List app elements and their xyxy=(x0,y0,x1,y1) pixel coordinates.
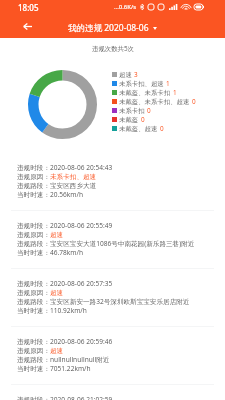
staticText: 1 xyxy=(166,79,170,88)
staticText: 超速 xyxy=(119,71,132,79)
staticText: ...0.6K/s xyxy=(114,3,137,11)
staticText: 2020-08-06 20:55:49 xyxy=(50,221,113,230)
staticText: 我的违规 2020-08-06 xyxy=(68,22,149,34)
staticText: 违规时段： xyxy=(17,280,50,288)
staticText: 未戴盔、未系卡扣、超速 xyxy=(119,98,190,106)
staticText: 违规路段： xyxy=(17,240,50,248)
staticText: 违规时段： xyxy=(17,164,50,172)
staticText: 违规次数共5次 xyxy=(92,44,134,53)
staticText: 110.92km/h xyxy=(50,306,87,315)
staticText: 违规时段： xyxy=(17,396,50,400)
button[interactable]: 违规时段： xyxy=(0,385,225,400)
staticText: 0 xyxy=(160,124,164,133)
staticText: 未戴盔、未系卡扣 xyxy=(119,89,171,97)
staticText: 20.56km/h xyxy=(50,190,84,199)
staticText: 违规路段： xyxy=(17,298,50,306)
staticText: 46.78km/h xyxy=(50,248,84,257)
staticText: 0 xyxy=(141,115,145,124)
staticText: 2020-08-06 20:57:35 xyxy=(50,279,113,288)
staticText: 1 xyxy=(173,88,177,97)
button[interactable]: 违规时段： xyxy=(0,153,225,211)
staticText: 3 xyxy=(134,70,138,79)
staticText: 超速 xyxy=(50,289,64,297)
staticText: 0 xyxy=(147,106,151,115)
staticText: 超速 xyxy=(50,231,64,239)
staticText: 宝安区宝安大道1086号中南花园(新乐路三巷)附近 xyxy=(50,239,195,248)
staticText: 当时时速： xyxy=(17,307,50,315)
staticText: 违规路段： xyxy=(17,356,50,364)
staticText: 未系卡扣、超速 xyxy=(119,80,164,88)
staticText: 未系卡扣 xyxy=(119,107,145,115)
staticText: 未系卡扣、超速 xyxy=(50,173,97,181)
staticText: 未戴盔、超速 xyxy=(119,125,158,133)
staticText: 违规原因： xyxy=(17,173,50,181)
staticText: 未戴盔 xyxy=(119,116,139,124)
button[interactable]: 违规时段： xyxy=(0,211,225,269)
staticText: 当时时速： xyxy=(17,191,50,199)
staticText: 宝安区新安一路32号深圳欧斯宝宝安乐居店附近 xyxy=(50,297,190,306)
staticText: 违规路段： xyxy=(17,182,50,190)
staticText: 超速 xyxy=(50,347,64,355)
staticText: 违规时段： xyxy=(17,338,50,346)
button[interactable]: 违规时段： xyxy=(0,269,225,327)
staticText: 当时时速： xyxy=(17,249,50,257)
button[interactable]: 我的违规 2020-08-06 xyxy=(68,16,157,40)
button[interactable]: 违规时段： xyxy=(0,327,225,385)
staticText: 违规原因： xyxy=(17,231,50,239)
staticText: 违规原因： xyxy=(17,347,50,355)
staticText: 违规时段： xyxy=(17,222,50,230)
staticText: 宝安区西乡大道 xyxy=(50,182,97,190)
staticText: 2020-08-06 21:02:59 xyxy=(50,395,113,400)
staticText: 违规原因： xyxy=(17,289,50,297)
staticText: 2020-08-06 20:54:43 xyxy=(50,163,113,172)
staticText: nullnullnullnull附近 xyxy=(50,355,110,364)
staticText: 0 xyxy=(192,97,196,106)
staticText: 7051.22km/h xyxy=(50,364,91,373)
staticText: 2020-08-06 20:59:46 xyxy=(50,337,113,346)
staticText: 18:05 xyxy=(18,2,39,13)
staticText: 当时时速： xyxy=(17,365,50,373)
button[interactable]: Back xyxy=(17,16,37,36)
